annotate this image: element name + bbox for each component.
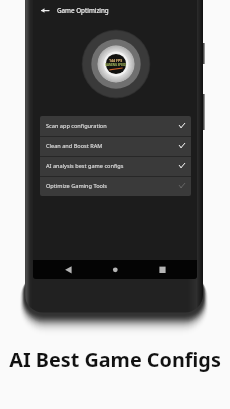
button[interactable]: Gaming speed gauge: [81, 29, 151, 99]
button[interactable]: Optimize Gaming Tools: [40, 176, 191, 196]
staticText: AI Best Game Configs: [9, 346, 221, 373]
button[interactable]: Home: [107, 260, 123, 276]
staticText: Game Optimizing: [57, 6, 109, 15]
staticText: Optimize Gaming Tools: [46, 182, 108, 190]
staticText: Clean and Boost RAM: [46, 142, 103, 150]
button[interactable]: Recents: [154, 260, 170, 276]
button[interactable]: AI analysis best game configs: [40, 156, 191, 176]
button[interactable]: Scan app configuration: [40, 116, 191, 136]
button[interactable]: Clean and Boost RAM: [40, 136, 191, 156]
button[interactable]: Back: [35, 1, 54, 19]
staticText: GAMING SPEED: [105, 63, 127, 67]
staticText: Scan app configuration: [46, 122, 107, 130]
button[interactable]: Back: [60, 260, 76, 276]
staticText: AI analysis best game configs: [46, 162, 124, 170]
staticText: 144 FPS: [109, 58, 123, 63]
